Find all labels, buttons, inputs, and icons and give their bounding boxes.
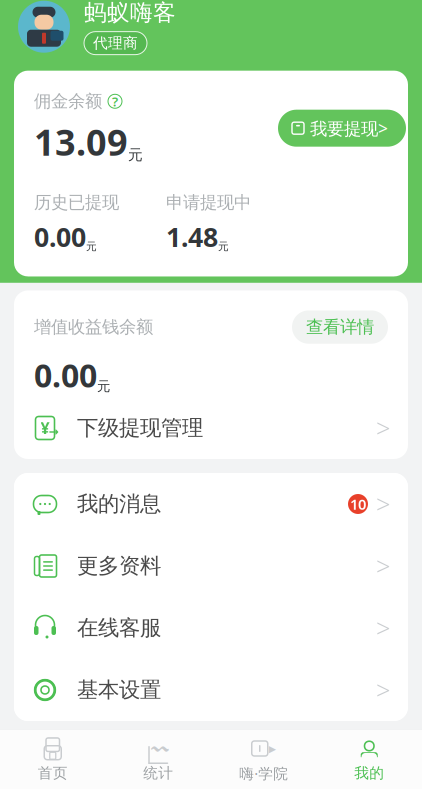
staticText: > xyxy=(376,411,390,445)
staticText: 10 xyxy=(350,494,366,514)
staticText: 查看详情 xyxy=(306,316,374,338)
staticText: > xyxy=(376,673,390,707)
staticText: > xyxy=(376,611,390,645)
staticText: 统计 xyxy=(143,764,173,782)
staticText: 元 xyxy=(128,146,143,164)
button[interactable]: ▸ xyxy=(211,729,316,789)
staticText: 我的消息 xyxy=(77,491,161,517)
staticText: 元 xyxy=(86,240,97,253)
staticText: 更多资料 xyxy=(77,553,161,579)
staticText: 0.00 xyxy=(34,219,86,254)
staticText: 基本设置 xyxy=(77,677,161,703)
staticText: 申请提现中 xyxy=(166,192,251,213)
button[interactable]: 更多资料 xyxy=(14,535,408,597)
button[interactable]: ¥ xyxy=(14,397,408,459)
staticText: 代理商 xyxy=(93,34,138,52)
staticText: 增值收益钱余额 xyxy=(34,316,153,338)
staticText: > xyxy=(376,487,390,521)
staticText: 佣金余额 xyxy=(34,91,102,112)
staticText: ¥ xyxy=(40,417,49,439)
staticText: 我要提现> xyxy=(310,117,388,140)
staticText: 〰 xyxy=(151,734,168,759)
button[interactable]: 〰 xyxy=(105,730,211,788)
staticText: ▸ xyxy=(269,740,276,757)
staticText: 嗨·学院 xyxy=(239,763,288,783)
staticText: 13.09 xyxy=(34,118,128,166)
staticText: 元 xyxy=(97,378,110,395)
staticText: > xyxy=(376,549,390,583)
button[interactable]: 我要提现> xyxy=(278,110,388,147)
button[interactable]: 首页 xyxy=(0,730,105,788)
button[interactable]: 基本设置 xyxy=(14,659,408,721)
staticText: 0.00 xyxy=(34,354,97,396)
button[interactable]: 查看详情 xyxy=(292,310,388,344)
staticText: ? xyxy=(112,92,118,110)
staticText: 1.48 xyxy=(166,219,218,254)
button[interactable]: 在线客服 xyxy=(14,597,408,659)
staticText: 元 xyxy=(218,240,229,253)
staticText: 首页 xyxy=(38,764,68,782)
button[interactable]: 我的 xyxy=(316,730,422,788)
staticText: 历史已提现 xyxy=(34,192,119,213)
staticText: 在线客服 xyxy=(77,615,161,641)
staticText: → xyxy=(48,425,58,438)
staticText: 蚂蚁嗨客 xyxy=(84,0,176,27)
button[interactable]: 我的消息 xyxy=(14,473,408,535)
staticText: 下级提现管理 xyxy=(77,415,203,441)
staticText: 我的 xyxy=(354,764,384,782)
